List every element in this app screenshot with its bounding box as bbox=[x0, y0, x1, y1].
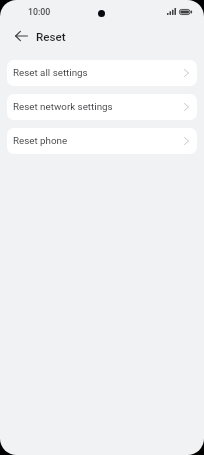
button[interactable]: Reset network settings bbox=[7, 94, 197, 120]
staticText: Reset all settings bbox=[13, 67, 88, 78]
button[interactable]: Reset phone bbox=[7, 128, 197, 154]
button[interactable]: Back bbox=[9, 24, 33, 48]
button[interactable]: Reset all settings bbox=[7, 60, 197, 86]
staticText: Reset bbox=[36, 30, 66, 44]
staticText: Reset phone bbox=[13, 135, 68, 146]
staticText: Reset network settings bbox=[13, 101, 113, 112]
staticText: 10:00 bbox=[28, 7, 51, 17]
